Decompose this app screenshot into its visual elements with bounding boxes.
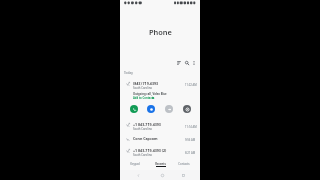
button[interactable]: Recent apps: [178, 170, 188, 180]
staticText: Conn Capcom: [133, 136, 158, 141]
staticText: (843) 719-4393: [133, 81, 159, 86]
button[interactable]: (843) 719-4393: [120, 78, 200, 116]
staticText: Phone: [149, 27, 172, 37]
staticText: 11:22 AM: [185, 83, 197, 87]
button[interactable]: Home: [157, 170, 167, 180]
button[interactable]: +1 843-719-4393 (2): [120, 146, 200, 159]
staticText: Outgoing call, Video Blue: [133, 92, 167, 96]
staticText: South Carolina: [133, 153, 152, 157]
button[interactable]: More options: [189, 58, 198, 67]
button[interactable]: Message: [147, 105, 155, 113]
staticText: Add to Contacts: [133, 96, 155, 100]
button[interactable]: Video call: [165, 105, 173, 113]
staticText: South Carolina: [133, 86, 152, 90]
staticText: +1 843-719-4393 (2): [133, 148, 167, 153]
staticText: 8:21 AM: [185, 151, 196, 155]
button[interactable]: Call: [130, 105, 138, 113]
staticText: 11:14 AM: [185, 125, 197, 129]
staticText: Today: [124, 71, 133, 75]
button[interactable]: Back: [133, 170, 143, 180]
button[interactable]: Keypad: [124, 159, 146, 170]
button[interactable]: Details: [183, 105, 191, 113]
staticText: Contacts: [178, 162, 190, 166]
staticText: Recents: [155, 162, 166, 166]
staticText: 9:56 AM: [185, 138, 196, 142]
staticText: +1 843-719-4393: [133, 122, 161, 127]
staticText: Keypad: [130, 162, 140, 166]
staticText: South Carolina: [133, 127, 152, 131]
button[interactable]: +1 843-719-4393: [120, 120, 200, 133]
button[interactable]: Recents: [149, 159, 171, 170]
button[interactable]: Conn Capcom: [120, 134, 200, 144]
button[interactable]: Contacts: [173, 159, 195, 170]
button[interactable]: Sort: [174, 58, 183, 67]
button[interactable]: Search: [182, 58, 191, 67]
